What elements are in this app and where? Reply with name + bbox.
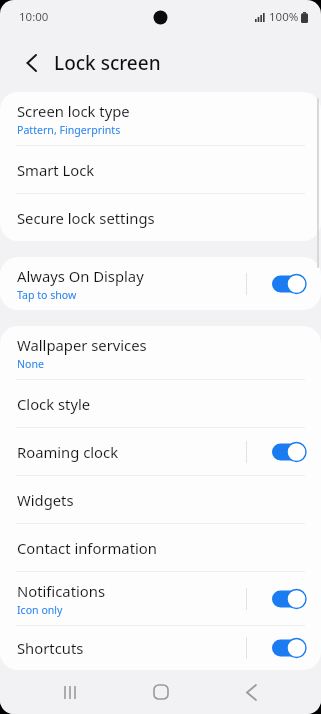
- button[interactable]: Clock style: [0, 380, 321, 427]
- button[interactable]: Toggle: [257, 437, 307, 467]
- button[interactable]: Toggle: [257, 584, 307, 614]
- staticText: Screen lock type: [17, 101, 130, 121]
- button[interactable]: Screen lock type: [0, 92, 321, 145]
- staticText: None: [17, 357, 44, 371]
- staticText: Contact information: [17, 538, 157, 558]
- staticText: 100%: [269, 9, 299, 25]
- button[interactable]: Toggle: [257, 633, 307, 663]
- staticText: Notifications: [17, 581, 106, 601]
- staticText: Roaming clock: [17, 442, 119, 462]
- staticText: Pattern, Fingerprints: [17, 123, 121, 137]
- button[interactable]: Toggle: [257, 269, 307, 299]
- button[interactable]: Home: [139, 670, 183, 714]
- button[interactable]: Always On Display: [0, 257, 321, 310]
- button[interactable]: Shortcuts: [0, 626, 321, 670]
- button[interactable]: Widgets: [0, 476, 321, 523]
- staticText: Shortcuts: [17, 638, 84, 658]
- button[interactable]: Secure lock settings: [0, 194, 321, 241]
- staticText: Widgets: [17, 490, 74, 510]
- button[interactable]: Back: [14, 46, 48, 80]
- staticText: Clock style: [17, 394, 91, 414]
- staticText: Wallpaper services: [17, 335, 147, 355]
- button[interactable]: Contact information: [0, 524, 321, 571]
- button[interactable]: Wallpaper services: [0, 326, 321, 379]
- staticText: Lock screen: [54, 50, 161, 76]
- button[interactable]: Notifications: [0, 572, 321, 625]
- staticText: Tap to show: [17, 288, 77, 302]
- staticText: Smart Lock: [17, 160, 95, 180]
- button[interactable]: Back: [229, 670, 273, 714]
- staticText: Always On Display: [17, 266, 144, 286]
- staticText: 10:00: [19, 9, 49, 25]
- staticText: Secure lock settings: [17, 208, 155, 228]
- button[interactable]: Recents: [48, 670, 92, 714]
- staticText: Icon only: [17, 603, 63, 617]
- button[interactable]: Roaming clock: [0, 428, 321, 475]
- button[interactable]: Smart Lock: [0, 146, 321, 193]
